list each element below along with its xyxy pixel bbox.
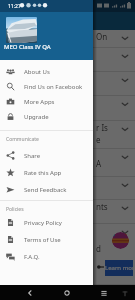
staticText: Upgrade: [24, 113, 49, 121]
staticText: F.A.Q.: [24, 253, 40, 261]
staticText: More Apps: [24, 98, 55, 106]
button[interactable]: Hide keyboard: [118, 285, 132, 300]
staticText: Find Us on Facebook: [24, 83, 83, 91]
button[interactable]: Find Us on Facebook: [0, 79, 93, 94]
button[interactable]: Recent apps: [97, 285, 111, 300]
button[interactable]: [0, 96, 135, 120]
staticText: MEO Class IV QA: [4, 43, 51, 51]
button[interactable]: Upgrade: [0, 109, 93, 124]
button[interactable]: Send Feedback: [0, 181, 93, 198]
button[interactable]: [0, 72, 135, 95]
staticText: Terms of Use: [24, 236, 61, 244]
button[interactable]: Rate this App: [0, 164, 93, 181]
staticText: d: [96, 243, 101, 254]
staticText: Privacy Policy: [24, 219, 62, 227]
staticText: On: [96, 31, 108, 42]
button[interactable]: On: [0, 30, 135, 47]
button[interactable]: Learn more: [105, 260, 133, 276]
button[interactable]: About Us: [0, 64, 93, 79]
button[interactable]: Terms of Use: [0, 231, 93, 248]
staticText: r Is: [96, 122, 108, 133]
button[interactable]: A: [0, 149, 135, 176]
button[interactable]: Promo badge: [112, 232, 129, 249]
button[interactable]: [0, 177, 135, 199]
button[interactable]: Back: [23, 285, 37, 300]
button[interactable]: Privacy Policy: [0, 214, 93, 231]
staticText: Communicate: [6, 136, 39, 143]
button[interactable]: r Is: [0, 121, 135, 148]
staticText: Rate this App: [24, 169, 62, 177]
staticText: Learn more: [105, 264, 133, 272]
button[interactable]: nts: [0, 200, 135, 223]
button[interactable]: Share: [0, 147, 93, 164]
staticText: Send Feedback: [24, 186, 67, 194]
staticText: A: [96, 158, 102, 169]
button[interactable]: F.A.Q.: [0, 248, 93, 265]
staticText: e: [96, 134, 101, 145]
button[interactable]: [0, 48, 135, 71]
button[interactable]: [0, 224, 135, 284]
staticText: nts: [96, 201, 108, 212]
staticText: Policies: [6, 206, 24, 213]
button[interactable]: Home: [60, 285, 74, 300]
staticText: Share: [24, 152, 41, 160]
button[interactable]: More Apps: [0, 94, 93, 109]
staticText: 11:27: [8, 3, 21, 10]
staticText: About Us: [24, 68, 50, 76]
